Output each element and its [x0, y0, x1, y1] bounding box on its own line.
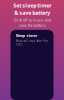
- staticText: Sleep timer: [15, 33, 37, 38]
- staticText: Drift off to music and save the battery: [13, 17, 50, 28]
- staticText: Music will stop after the timer: [15, 39, 48, 46]
- staticText: Set sleep timer & save battery: [13, 2, 51, 16]
